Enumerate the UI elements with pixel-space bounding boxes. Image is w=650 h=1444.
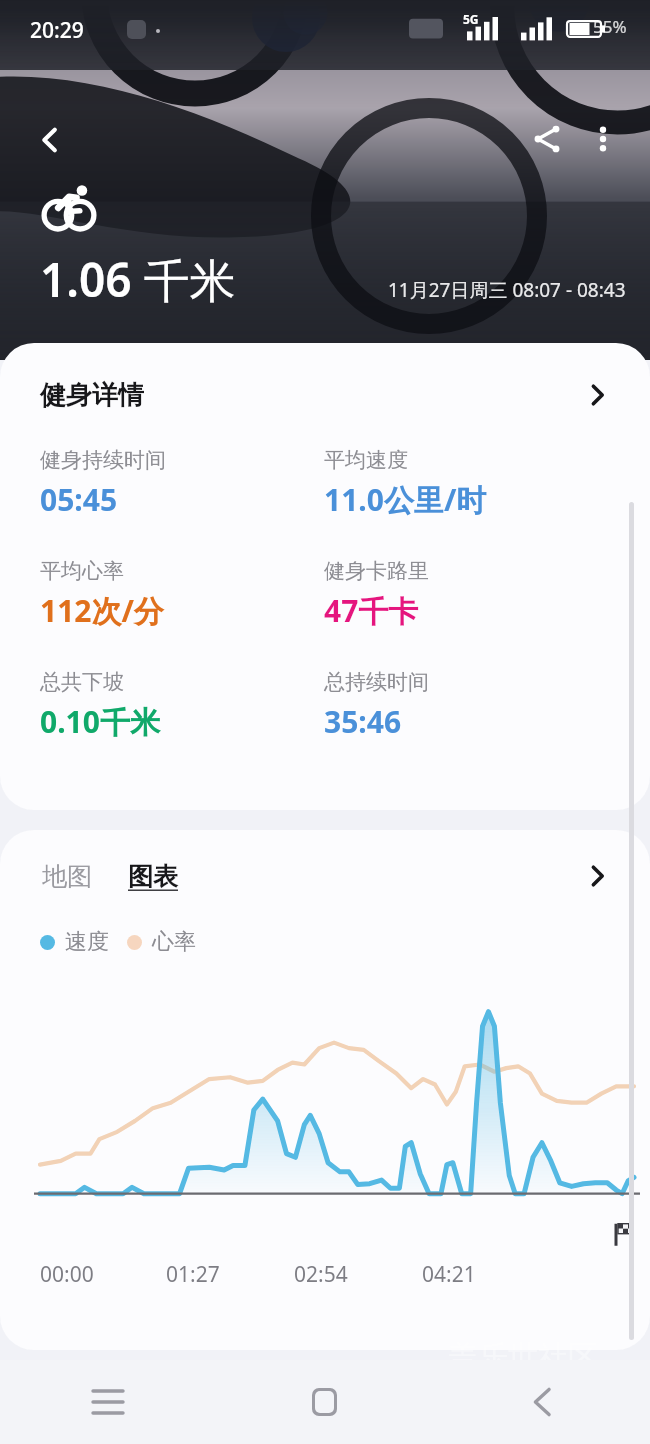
- staticText: 20:29: [30, 16, 84, 45]
- staticText: 01:27: [166, 1260, 220, 1289]
- staticText: 47千卡: [324, 590, 419, 631]
- button[interactable]: Open: [574, 853, 620, 899]
- button[interactable]: 健身详情: [0, 343, 650, 447]
- staticText: 总持续时间: [324, 669, 429, 695]
- staticText: 速度: [65, 928, 109, 956]
- staticText: 35:46: [324, 701, 402, 742]
- staticText: 平均心率: [40, 558, 124, 584]
- staticText: 02:54: [294, 1260, 348, 1289]
- button[interactable]: Home: [216, 1360, 433, 1444]
- button[interactable]: Back: [433, 1360, 650, 1444]
- staticText: 04:21: [422, 1260, 476, 1289]
- button[interactable]: 地图: [38, 853, 96, 900]
- staticText: 05:45: [40, 479, 118, 520]
- button[interactable]: Back: [22, 112, 78, 168]
- staticText: 11月27日周三 08:07 - 08:43: [388, 277, 626, 303]
- button[interactable]: More options: [574, 110, 632, 168]
- staticText: 总共下坡: [40, 669, 124, 695]
- staticText: @杨杨5: [520, 1388, 600, 1419]
- button[interactable]: Recent apps: [0, 1360, 216, 1444]
- staticText: 平均速度: [324, 447, 408, 473]
- staticText: 00:00: [40, 1260, 94, 1289]
- staticText: 55%: [593, 15, 627, 38]
- staticText: 地图: [42, 861, 92, 892]
- staticText: 图表: [128, 861, 178, 892]
- button[interactable]: Open: [574, 372, 620, 418]
- staticText: 1.06 千米: [40, 248, 236, 311]
- staticText: 盖乐世社区: [448, 1338, 598, 1376]
- staticText: 5G: [463, 11, 479, 27]
- staticText: 心率: [152, 928, 196, 956]
- staticText: 112次/分: [40, 590, 164, 631]
- staticText: 健身持续时间: [40, 447, 166, 473]
- staticText: 健身卡路里: [324, 558, 429, 584]
- staticText: 11.0公里/时: [324, 479, 487, 520]
- staticText: 健身详情: [40, 379, 144, 412]
- button[interactable]: 图表: [124, 853, 182, 900]
- staticText: 0.10千米: [40, 701, 160, 742]
- button[interactable]: Share: [518, 110, 576, 168]
